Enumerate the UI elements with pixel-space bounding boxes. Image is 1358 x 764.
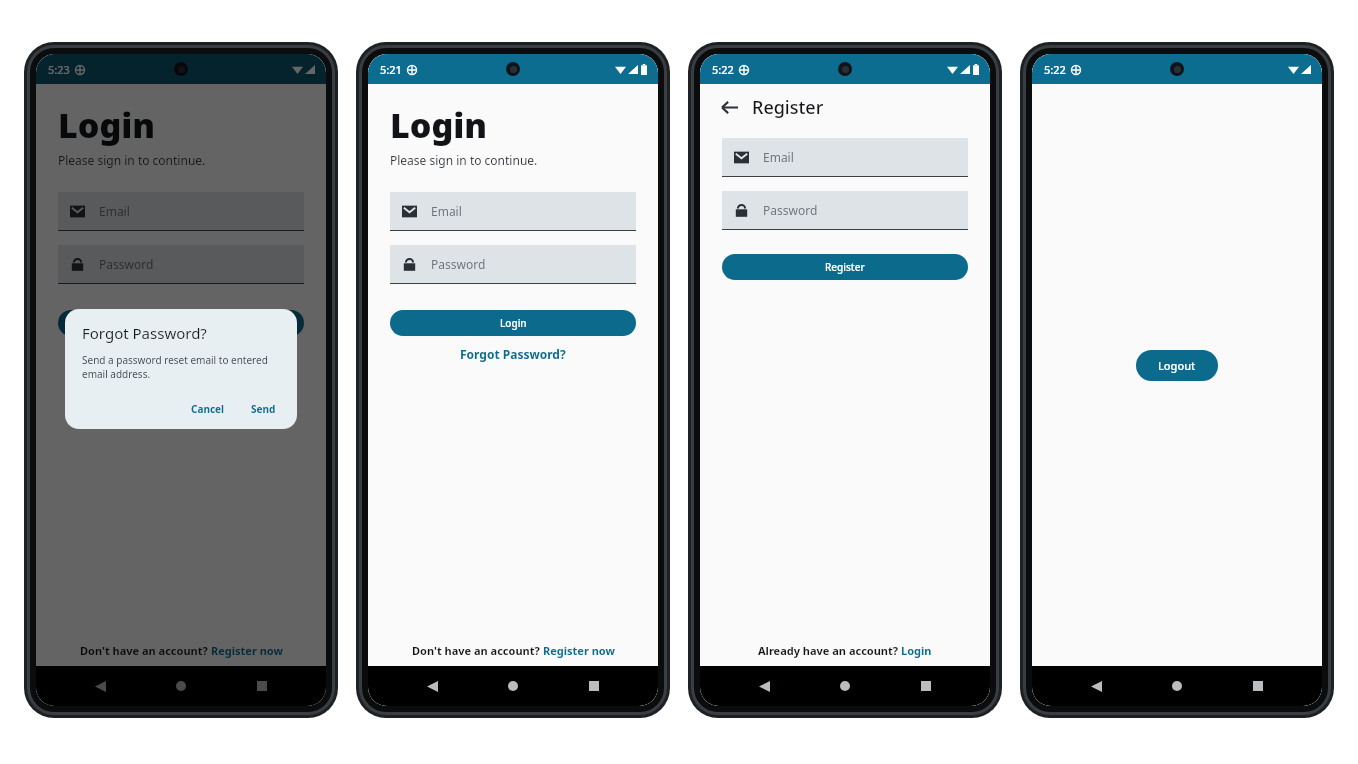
button[interactable]: Send [243,399,284,419]
staticText: Please sign in to continue. [58,152,206,168]
button[interactable]: Back [747,669,781,703]
button[interactable]: Forgot Password? [390,346,636,362]
staticText: Send [251,402,276,416]
button[interactable]: Email [390,192,636,231]
staticText: Password [431,256,486,272]
button[interactable]: Already have an account? [700,634,990,666]
button[interactable]: Email [58,192,304,231]
staticText: 5:22 [1044,62,1066,77]
button[interactable]: Logout [1136,350,1218,381]
button[interactable]: Recents [1241,669,1275,703]
staticText: Login [58,102,156,148]
staticText: Forgot Password? [82,323,207,343]
button[interactable]: Register [722,254,968,280]
staticText: Don't have an account? [80,643,211,658]
staticText: Password [763,202,818,218]
staticText: 5:23 [48,62,70,77]
staticText: Login [901,643,932,658]
staticText: 5:22 [712,62,734,77]
staticText: Email [431,203,462,219]
staticText: Already have an account? [758,643,901,658]
staticText: Please sign in to continue. [390,152,538,168]
button[interactable]: Password [722,191,968,230]
button[interactable]: Login [390,310,636,336]
staticText: Login [500,316,527,330]
staticText: Login [390,102,488,148]
staticText: Register now [543,643,615,658]
staticText: Forgot Password? [460,346,566,362]
staticText: Send a password reset email to entered e… [82,353,268,381]
button[interactable]: Don't have an account? [36,634,326,666]
staticText: Email [99,203,130,219]
button[interactable]: Back [1079,669,1113,703]
staticText: Email [763,149,794,165]
button[interactable]: Recents [577,669,611,703]
button[interactable]: Recents [909,669,943,703]
staticText: Register [825,260,865,274]
staticText: Logout [1158,358,1196,373]
staticText: Cancel [191,402,225,416]
button[interactable]: Back [415,669,449,703]
staticText: Password [99,256,154,272]
button[interactable]: Login [58,310,304,336]
button[interactable]: Home [828,669,862,703]
staticText: Don't have an account? [412,643,543,658]
button[interactable]: Home [164,669,198,703]
button[interactable]: Back [83,669,117,703]
button[interactable]: Password [390,245,636,284]
staticText: Register [752,95,824,120]
button[interactable]: Cancel [183,399,233,419]
button[interactable]: Don't have an account? [368,634,658,666]
button[interactable]: Home [1160,669,1194,703]
button[interactable]: Home [496,669,530,703]
button[interactable]: Back [714,92,744,122]
button[interactable]: Forgot Password? [58,346,304,362]
staticText: Forgot Password? [128,346,234,362]
button[interactable]: Email [722,138,968,177]
staticText: 5:21 [380,62,402,77]
button[interactable]: Recents [245,669,279,703]
button[interactable]: Password [58,245,304,284]
staticText: Register now [211,643,283,658]
